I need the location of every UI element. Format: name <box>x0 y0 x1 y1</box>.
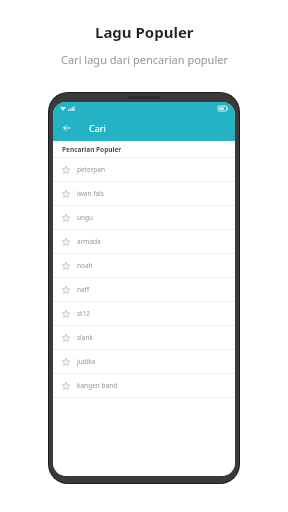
button[interactable]: naff <box>53 278 235 301</box>
staticText: slank <box>77 333 93 342</box>
button[interactable]: kangen band <box>53 374 235 397</box>
staticText: Lagu Populer <box>95 22 194 42</box>
button[interactable]: noah <box>53 254 235 277</box>
staticText: armada <box>77 237 101 246</box>
button[interactable]: peterpan <box>53 158 235 181</box>
button[interactable]: ungu <box>53 206 235 229</box>
staticText: peterpan <box>77 165 106 174</box>
staticText: noah <box>77 261 93 270</box>
button[interactable]: slank <box>53 326 235 349</box>
button[interactable]: armada <box>53 230 235 253</box>
staticText: Cari <box>89 122 106 134</box>
staticText: naff <box>77 285 90 294</box>
staticText: judika <box>77 357 96 366</box>
button[interactable]: judika <box>53 350 235 373</box>
staticText: kangen band <box>77 381 118 390</box>
staticText: Cari lagu dari pencarian populer <box>61 52 228 67</box>
button[interactable]: Back <box>57 118 77 138</box>
button[interactable]: st12 <box>53 302 235 325</box>
staticText: st12 <box>77 309 90 318</box>
staticText: Pencarian Populer <box>62 145 122 154</box>
staticText: iwan fals <box>77 189 104 198</box>
button[interactable]: iwan fals <box>53 182 235 205</box>
staticText: ungu <box>77 213 94 222</box>
